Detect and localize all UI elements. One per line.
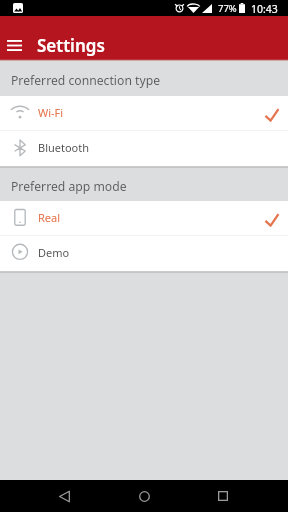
staticText: Real bbox=[38, 210, 61, 225]
button[interactable]: Recent apps bbox=[203, 480, 243, 512]
button[interactable]: Bluetooth bbox=[0, 131, 288, 166]
button[interactable]: Demo bbox=[0, 236, 288, 271]
staticText: 10:43 bbox=[251, 2, 278, 16]
button[interactable]: Wi-Fi bbox=[0, 96, 288, 131]
staticText: Demo bbox=[38, 245, 70, 260]
button[interactable]: Back bbox=[44, 480, 84, 512]
button[interactable]: Real bbox=[0, 201, 288, 236]
staticText: Preferred connection type bbox=[11, 72, 161, 89]
staticText: Preferred app mode bbox=[11, 178, 127, 195]
staticText: Settings bbox=[37, 34, 105, 57]
button[interactable]: Home bbox=[124, 480, 164, 512]
staticText: Wi-Fi bbox=[38, 105, 64, 120]
staticText: Bluetooth bbox=[38, 140, 90, 155]
staticText: 77% bbox=[218, 2, 237, 15]
button[interactable]: Open navigation menu bbox=[0, 31, 29, 60]
